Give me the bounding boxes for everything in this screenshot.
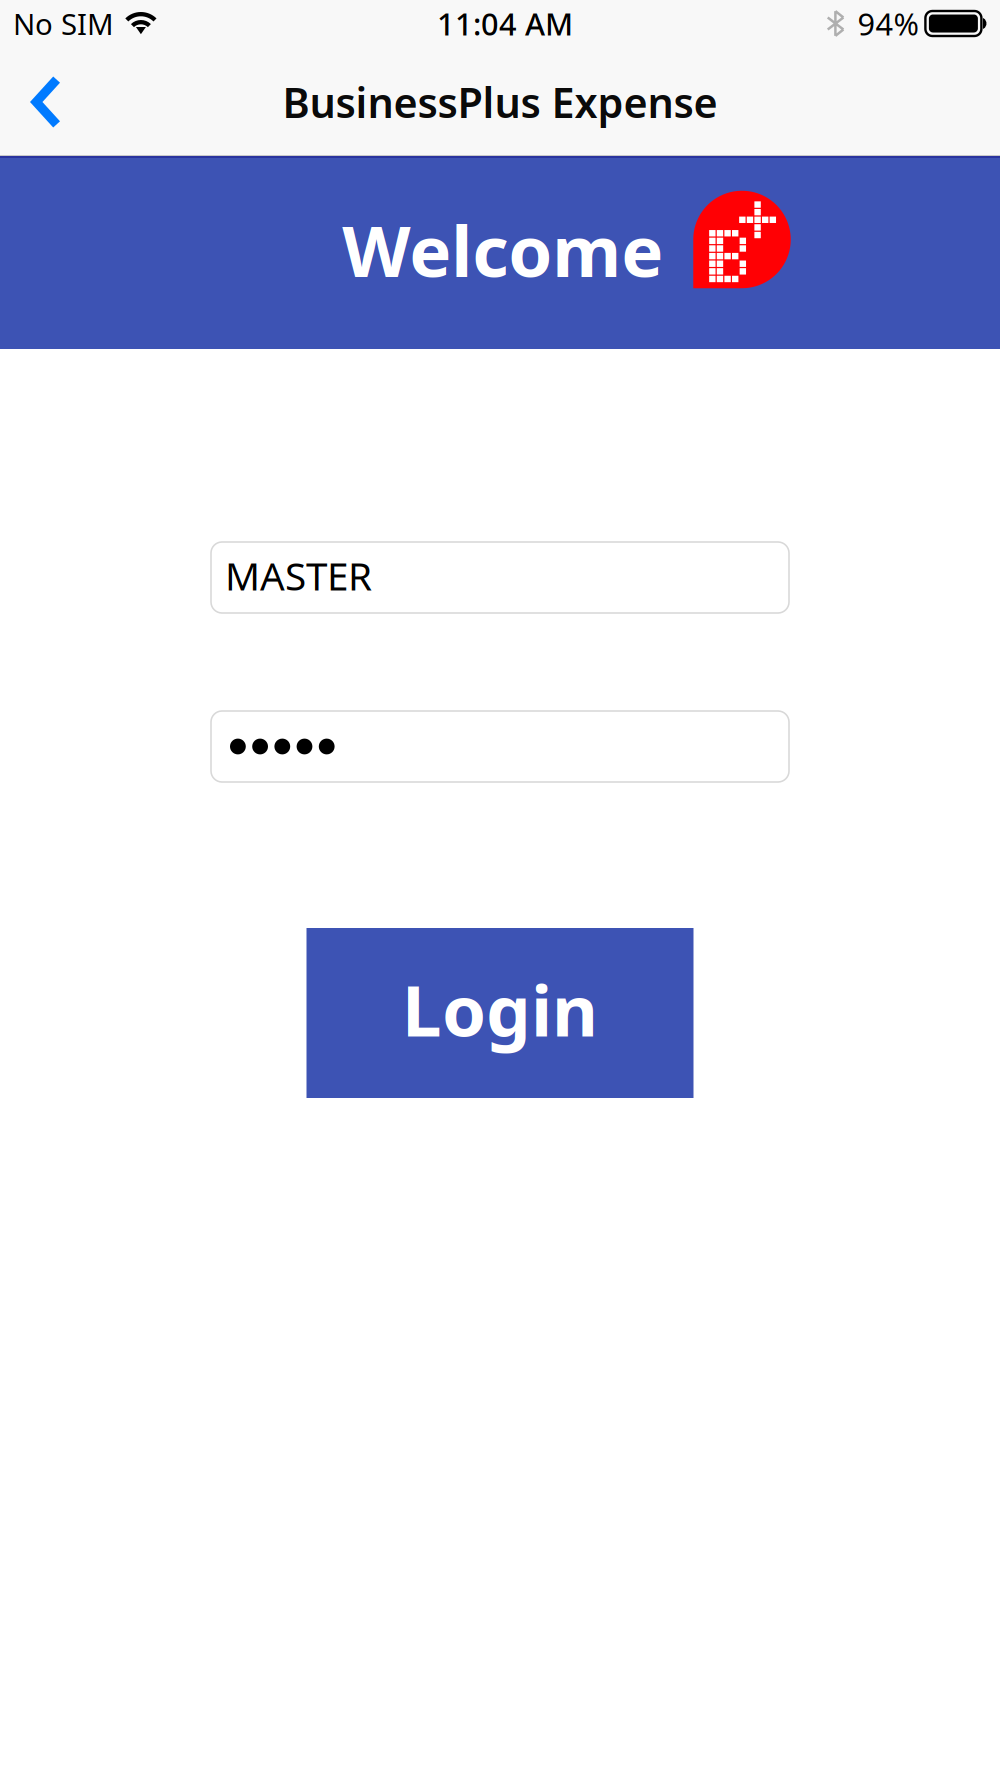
button[interactable]: Password [211,711,789,782]
staticText: Welcome [342,203,663,296]
staticText: BusinessPlus Expense [282,75,717,129]
staticText: Login [402,962,598,1056]
staticText: 94% [857,3,918,44]
button[interactable]: Back [0,51,86,151]
button[interactable]: Login [306,928,693,1098]
staticText: 11:04 AM [437,3,573,44]
staticText: No SIM [13,4,114,43]
button[interactable]: MASTER [211,542,789,613]
staticText: MASTER [225,550,372,601]
